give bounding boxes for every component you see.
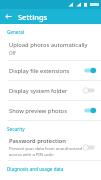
button[interactable]: Password protection xyxy=(0,134,101,160)
staticText: Prevent your data from unauthorized acce… xyxy=(9,146,83,157)
button[interactable]: Switch off xyxy=(83,143,96,152)
staticText: Upload photos automatically xyxy=(9,41,88,49)
staticText: Display system folder xyxy=(9,87,68,95)
staticText: Display file extensions xyxy=(9,67,70,75)
button[interactable]: Switch on xyxy=(83,106,96,115)
button[interactable]: Show preview photos xyxy=(0,101,101,120)
button[interactable]: Switch on xyxy=(83,66,96,75)
staticText: Off xyxy=(9,50,16,56)
staticText: Password protection xyxy=(9,137,66,145)
staticText: Diagnosis and usage data xyxy=(7,166,64,172)
button[interactable]: Upload photos automatically xyxy=(0,37,101,60)
staticText: Settings xyxy=(18,12,48,22)
staticText: Security xyxy=(7,126,25,132)
button[interactable]: Switch off xyxy=(83,86,96,95)
staticText: Show preview photos xyxy=(9,107,67,115)
button[interactable]: Back xyxy=(3,11,14,22)
button[interactable]: Display file extensions xyxy=(0,61,101,80)
staticText: General xyxy=(7,29,25,35)
button[interactable]: Display system folder xyxy=(0,81,101,100)
